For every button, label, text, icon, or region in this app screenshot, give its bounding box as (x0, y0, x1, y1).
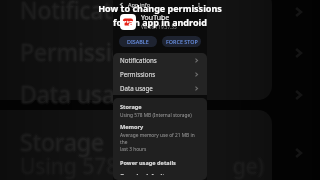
staticText: for an app in android (113, 16, 207, 28)
staticText: Permissions (19, 35, 150, 66)
staticText: last 3 hours (120, 146, 147, 153)
staticText: Storage (20, 128, 104, 159)
staticText: Using 578 MB ge) (18, 152, 262, 180)
staticText: Storage (18, 126, 102, 157)
staticText: App info (128, 1, 151, 9)
staticText: Using 578 MB ge) (22, 152, 266, 180)
staticText: Data usage (20, 78, 143, 109)
staticText: Permissions (19, 37, 150, 68)
staticText: Notification (20, 0, 146, 23)
staticText: Using 578 MB ge) (20, 152, 264, 180)
staticText: Using 578 MB ge) (19, 151, 263, 180)
button[interactable]: Open by default (113, 170, 207, 177)
button[interactable]: DISABLE (119, 36, 157, 47)
staticText: Permissions (18, 36, 149, 67)
button[interactable]: Memory (113, 121, 207, 155)
staticText: Permissions (20, 36, 151, 67)
staticText: Permissions (21, 35, 152, 66)
staticText: How to change permissions (98, 2, 222, 14)
staticText: Using 578 MB ge) (20, 150, 264, 179)
staticText: DISABLE (127, 38, 149, 45)
staticText: Data usage (19, 77, 142, 108)
staticText: FORCE STOP (166, 38, 198, 45)
staticText: Storage (21, 125, 105, 156)
staticText: Average memory use of 21 MB in the (120, 132, 200, 146)
staticText: Version 19.37.35 (141, 24, 177, 30)
button[interactable]: Storage (113, 101, 207, 121)
staticText: Data usage (18, 78, 141, 109)
staticText: Notification (18, 0, 144, 25)
staticText: Data usage (22, 78, 145, 109)
staticText: Using 578 MB ge) (21, 153, 265, 180)
button[interactable]: Permissions (113, 67, 207, 81)
staticText: Using 578 MB ge) (19, 153, 263, 180)
staticText: Storage (22, 126, 106, 157)
staticText: Storage (120, 103, 142, 111)
staticText: Using 578 MB (Internal storage) (120, 112, 192, 119)
staticText: Notification (20, 0, 146, 25)
staticText: Permissions (22, 36, 153, 67)
staticText: Notification (22, 0, 148, 25)
staticText: Memory (120, 123, 144, 131)
staticText: Notification (19, 0, 145, 26)
staticText: Storage (19, 127, 103, 158)
staticText: Data usage (21, 77, 144, 108)
staticText: Permissions (20, 34, 151, 65)
staticText: Permissions (120, 70, 156, 78)
staticText: Notification (19, 0, 145, 24)
staticText: Power usage details (120, 159, 176, 167)
staticText: YouTube (141, 13, 170, 23)
staticText: Notification (20, 0, 146, 27)
staticText: Storage (20, 126, 104, 157)
staticText: Data usage (20, 80, 143, 111)
button[interactable]: FORCE STOP (162, 36, 201, 47)
button[interactable]: Power usage details (113, 157, 207, 169)
staticText: Permissions (20, 38, 151, 69)
staticText: Using 578 MB ge) (21, 151, 265, 180)
staticText: Data usage (20, 76, 143, 107)
button[interactable]: Back (118, 1, 125, 8)
staticText: Data usage (120, 84, 153, 92)
staticText: Storage (21, 127, 105, 158)
staticText: Notification (21, 0, 147, 26)
staticText: Data usage (19, 79, 142, 110)
button[interactable]: More options (195, 1, 202, 8)
staticText: Notification (21, 0, 147, 24)
staticText: Data usage (21, 79, 144, 110)
button[interactable]: Data usage (113, 81, 207, 95)
staticText: Notifications (120, 56, 157, 64)
button[interactable]: Notifications (113, 53, 207, 67)
staticText: Permissions (21, 37, 152, 68)
staticText: Open by default (120, 172, 165, 175)
staticText: Storage (20, 124, 104, 155)
staticText: Using 578 MB ge) (20, 154, 264, 180)
staticText: Storage (19, 125, 103, 156)
